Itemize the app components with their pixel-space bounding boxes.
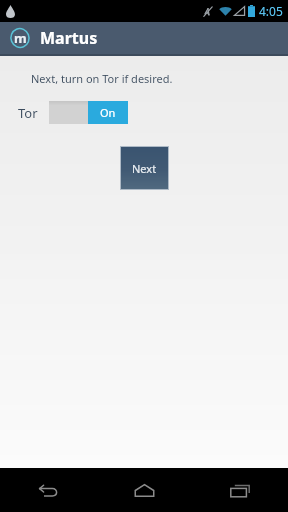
button[interactable]: Tor enabled xyxy=(49,101,128,124)
button[interactable]: Next xyxy=(121,147,168,189)
staticText: Tor xyxy=(18,104,38,122)
button[interactable]: Home xyxy=(96,468,192,512)
staticText: 4:05 xyxy=(259,3,283,19)
staticText: m xyxy=(14,29,27,47)
staticText: Next xyxy=(132,161,157,176)
staticText: Martus xyxy=(40,27,98,49)
staticText: Next, turn on Tor if desired. xyxy=(31,71,173,86)
staticText: On xyxy=(100,105,116,120)
button[interactable]: Back xyxy=(0,468,96,512)
button[interactable]: Recent apps xyxy=(192,468,288,512)
